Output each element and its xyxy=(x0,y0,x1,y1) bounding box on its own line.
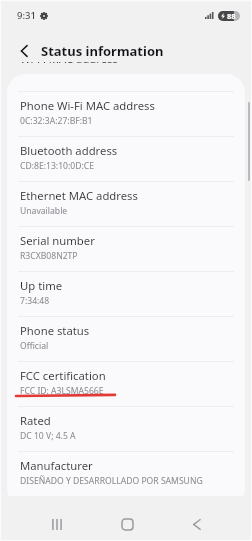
button[interactable]: FCC certification xyxy=(7,358,245,403)
button[interactable]: Manufacturer xyxy=(7,448,245,493)
staticText: Serial number xyxy=(20,233,95,248)
staticText: 9:31 xyxy=(17,9,36,22)
staticText: CD:8E:13:10:0D:CE xyxy=(20,160,94,172)
button[interactable]: Serial number xyxy=(7,223,245,268)
button[interactable]: Ethernet MAC address xyxy=(7,178,245,223)
staticText: FCC ID: A3LSMA566E xyxy=(20,385,104,397)
staticText: Wi-Fi MAC address xyxy=(20,51,118,63)
staticText: 7:34:48 xyxy=(20,295,50,307)
staticText: DISEÑADO Y DESARROLLADO POR SAMSUNG xyxy=(20,475,203,487)
button[interactable]: Phone status xyxy=(7,313,245,358)
staticText: 88 xyxy=(227,11,236,21)
staticText: DC 10 V; 4.5 A xyxy=(20,430,76,442)
staticText: Unavailable xyxy=(20,205,68,217)
button[interactable]: Recent apps xyxy=(40,507,74,541)
staticText: Bluetooth address xyxy=(20,143,118,158)
button[interactable]: Bluetooth address xyxy=(7,133,245,178)
staticText: Manufacturer xyxy=(20,458,93,473)
button[interactable]: Phone Wi-Fi MAC address xyxy=(7,88,245,133)
button[interactable]: Up time xyxy=(7,268,245,313)
staticText: Official xyxy=(20,340,49,352)
button[interactable]: Home xyxy=(110,507,144,541)
staticText: 0C:32:3A:27:BF:B1 xyxy=(20,115,93,127)
staticText: Status information xyxy=(41,42,164,60)
button[interactable]: Rated xyxy=(7,403,245,448)
staticText: Phone status xyxy=(20,323,90,338)
staticText: R3CXB08N2TP xyxy=(20,250,78,262)
button[interactable]: Back xyxy=(180,507,214,541)
staticText: FCC certification xyxy=(20,368,106,383)
button[interactable]: Navigate up xyxy=(12,40,36,62)
staticText: Ethernet MAC address xyxy=(20,188,138,203)
staticText: Phone Wi-Fi MAC address xyxy=(20,98,155,113)
staticText: Rated xyxy=(20,413,51,428)
staticText: Up time xyxy=(20,278,63,293)
